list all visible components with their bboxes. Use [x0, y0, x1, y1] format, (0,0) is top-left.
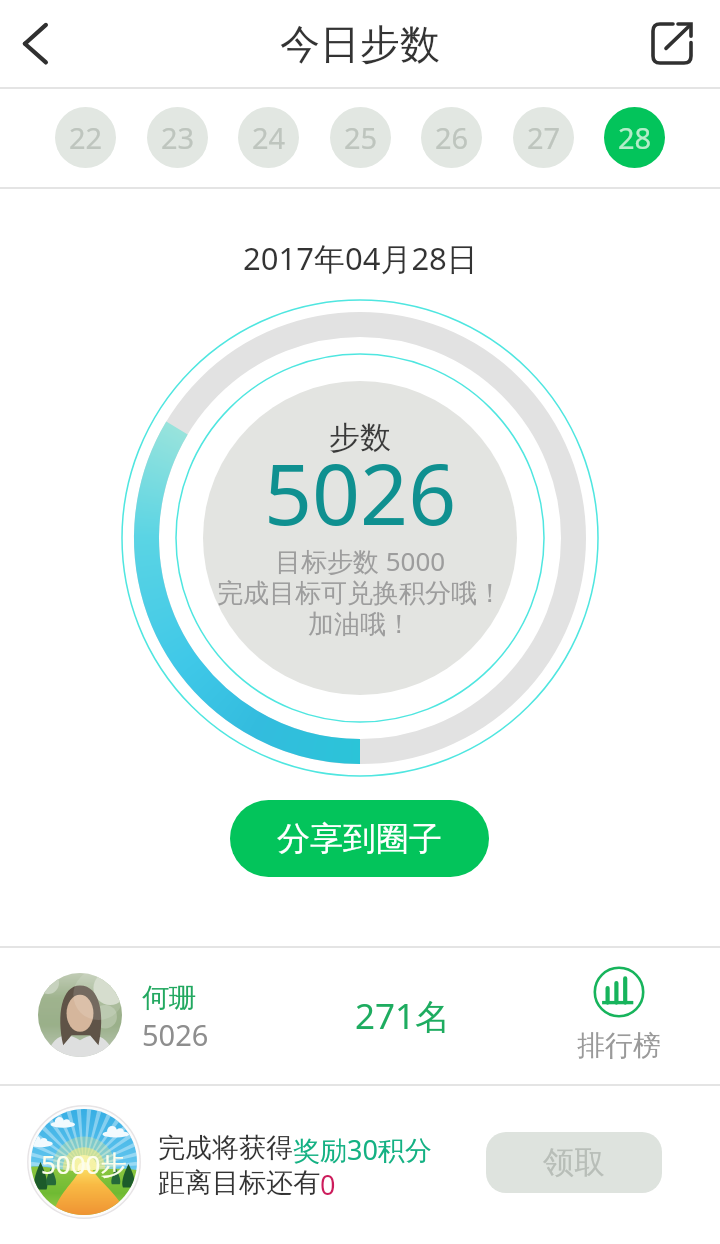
button[interactable]: 分享到圈子	[230, 800, 489, 877]
button[interactable]: 23	[147, 107, 208, 168]
staticText: 今日步数	[280, 19, 440, 69]
staticText: 27	[527, 118, 561, 157]
button[interactable]: 领取	[486, 1132, 662, 1193]
staticText: 26	[435, 118, 469, 157]
staticText: 24	[252, 118, 286, 157]
staticText: 271名	[355, 992, 451, 1040]
button[interactable]: 何珊	[0, 948, 720, 1082]
staticText: 5000步	[41, 1146, 127, 1182]
staticText: 领取	[543, 1143, 605, 1182]
button[interactable]: 24	[238, 107, 299, 168]
staticText: 距离目标还有	[158, 1166, 320, 1200]
button[interactable]: 28	[604, 107, 665, 168]
staticText: 何珊	[142, 981, 196, 1015]
staticText: 2017年04月28日	[243, 237, 478, 279]
staticText: 28	[618, 118, 652, 157]
button[interactable]: 排行榜	[570, 967, 667, 1063]
staticText: 奖励30积分	[293, 1131, 432, 1168]
staticText: 5026	[142, 1015, 209, 1054]
staticText: 23	[161, 118, 195, 157]
button[interactable]: 26	[421, 107, 482, 168]
staticText: 排行榜	[577, 1028, 661, 1063]
staticText: 分享到圈子	[277, 818, 442, 860]
staticText: 5026	[264, 435, 457, 549]
staticText: 目标步数 5000 完成目标可兑换积分哦！ 加油哦！	[217, 543, 503, 641]
button[interactable]: 27	[513, 107, 574, 168]
staticText: 0	[320, 1166, 336, 1203]
staticText: 步数	[329, 418, 391, 457]
button[interactable]: Back	[0, 0, 87, 87]
staticText: 完成将获得	[158, 1131, 293, 1165]
button[interactable]: Share	[633, 0, 720, 87]
staticText: 22	[69, 118, 103, 157]
staticText: 25	[344, 118, 378, 157]
button[interactable]: 22	[55, 107, 116, 168]
button[interactable]: 25	[330, 107, 391, 168]
